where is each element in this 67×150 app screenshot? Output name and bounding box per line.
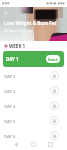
button[interactable]: DAY 1 (3, 51, 64, 67)
button[interactable]: Back (0, 7, 11, 18)
button[interactable]: DAY 2 (4, 68, 59, 83)
button[interactable]: DAY 4 (4, 98, 59, 113)
staticText: DAY 2 (4, 73, 16, 79)
staticText: Start (48, 57, 58, 62)
staticText: DAY 1 (6, 56, 19, 62)
staticText: DAY 4 (4, 103, 16, 109)
staticText: WEEK 1 (9, 43, 26, 49)
staticText: DAY 6 (4, 133, 16, 139)
button[interactable]: DAY 5 (4, 113, 59, 128)
button[interactable]: DAY 6 (4, 128, 59, 143)
staticText: 30 Days Challenge (4, 28, 33, 32)
staticText: Lose Weight & Burn Fat (4, 20, 57, 26)
staticText: DAY 5 (4, 118, 16, 124)
button[interactable]: DAY 3 (4, 83, 59, 98)
staticText: DAY 3 (4, 88, 16, 94)
